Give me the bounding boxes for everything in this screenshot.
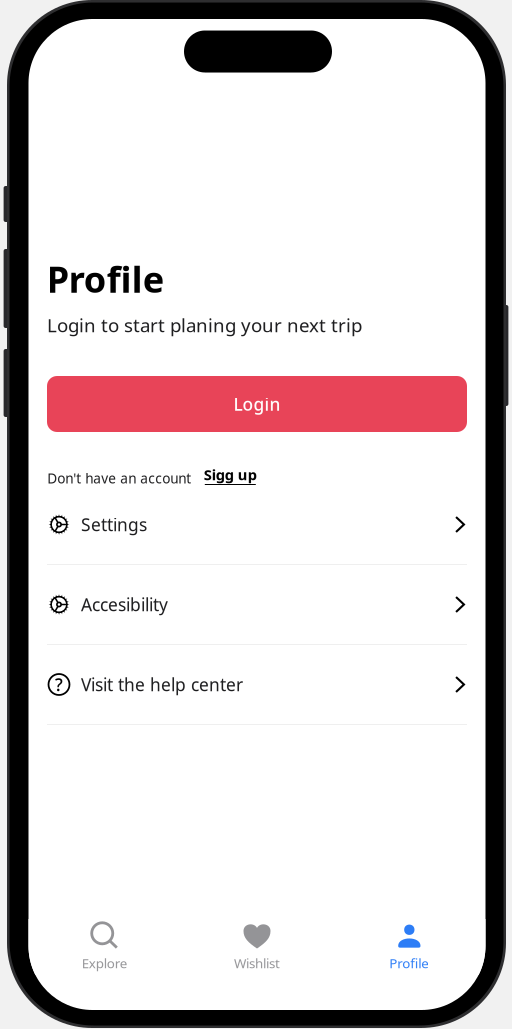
staticText: Don't have an account <box>47 469 191 487</box>
staticText: Sigg up <box>204 465 257 484</box>
staticText: Login to start planing your next trip <box>47 313 362 337</box>
button[interactable]: ? <box>47 645 467 724</box>
staticText: Settings <box>81 513 147 536</box>
staticText: Wishlist <box>234 954 280 972</box>
button[interactable]: Wishlist <box>181 919 333 975</box>
staticText: Login <box>233 392 280 415</box>
button[interactable]: Sigg up <box>203 465 257 489</box>
button[interactable]: Settings <box>47 485 467 564</box>
button[interactable]: Profile <box>333 919 485 975</box>
staticText: Explore <box>82 954 128 972</box>
staticText: Accesibility <box>81 593 168 616</box>
button[interactable]: Explore <box>28 919 181 975</box>
button[interactable]: Accesibility <box>47 565 467 644</box>
staticText: Profile <box>389 954 429 972</box>
button[interactable]: Login <box>47 376 467 432</box>
staticText: ? <box>55 673 63 696</box>
staticText: Visit the help center <box>81 673 243 696</box>
staticText: Profile <box>47 255 164 303</box>
